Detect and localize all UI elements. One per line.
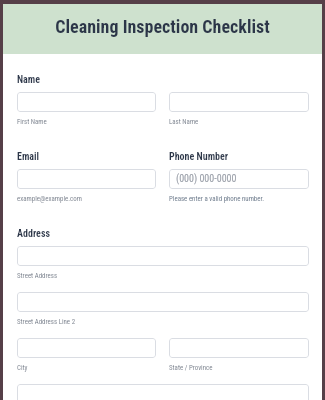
staticText: Last Name <box>169 118 199 126</box>
staticText: Email <box>17 151 40 163</box>
button[interactable]: Email <box>17 169 156 189</box>
button[interactable]: City <box>17 338 156 358</box>
button[interactable]: Postal / Zip Code <box>17 384 309 400</box>
staticText: City <box>17 364 28 372</box>
staticText: Address <box>17 228 50 240</box>
staticText: example@example.com <box>17 195 82 203</box>
staticText: Cleaning Inspection Checklist <box>55 16 270 37</box>
button[interactable]: Street Address <box>17 246 309 266</box>
button[interactable]: Last Name <box>169 92 309 112</box>
staticText: Name <box>17 74 41 86</box>
staticText: First Name <box>17 118 47 126</box>
button[interactable]: Street Address Line 2 <box>17 292 309 312</box>
button[interactable]: First Name <box>17 92 156 112</box>
staticText: Phone Number <box>169 151 229 163</box>
staticText: (000) 000-0000 <box>176 173 237 185</box>
staticText: Street Address Line 2 <box>17 318 76 326</box>
staticText: Street Address <box>17 272 58 280</box>
staticText: State / Province <box>169 364 213 372</box>
staticText: Please enter a valid phone number. <box>169 195 264 203</box>
button[interactable]: State / Province <box>169 338 309 358</box>
button[interactable]: Phone Number <box>169 169 309 189</box>
